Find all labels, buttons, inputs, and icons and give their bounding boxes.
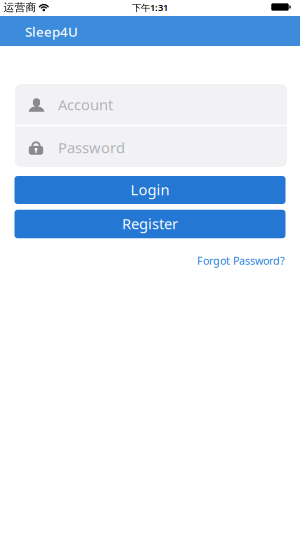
staticText: Password: [58, 138, 125, 157]
staticText: 下午1:31: [132, 1, 168, 14]
staticText: 运营商: [3, 1, 36, 14]
staticText: Register: [122, 214, 178, 233]
staticText: Sleep4U: [25, 23, 78, 40]
staticText: Login: [130, 180, 169, 199]
staticText: Account: [58, 95, 113, 114]
staticText: Forgot Password?: [197, 253, 285, 268]
